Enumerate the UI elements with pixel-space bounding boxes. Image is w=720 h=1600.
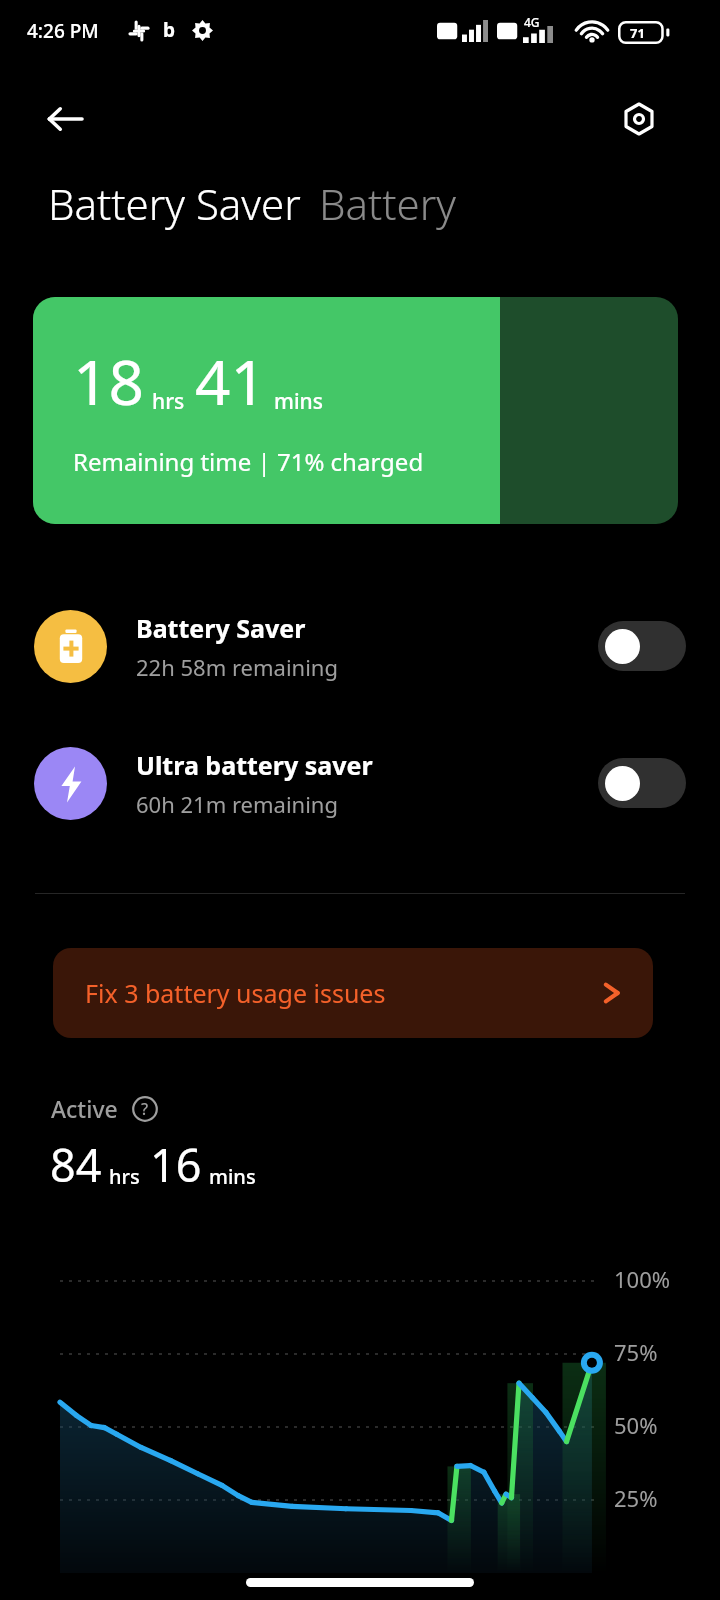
button[interactable]: Battery Saver <box>48 175 301 232</box>
staticText: mins <box>209 1163 256 1190</box>
staticText: 71 <box>630 24 645 42</box>
staticText: 75% <box>614 1337 658 1367</box>
button[interactable]: Battery Saver <box>34 602 686 690</box>
staticText: hrs <box>152 387 185 416</box>
staticText: hrs <box>109 1163 140 1190</box>
staticText: b <box>163 17 176 43</box>
button[interactable]: Ultra battery saver <box>34 739 686 827</box>
button[interactable]: Back <box>34 88 96 150</box>
staticText: 4G <box>524 14 540 30</box>
button[interactable]: Home <box>246 1578 474 1587</box>
button[interactable]: Battery Saver toggle <box>598 621 686 671</box>
staticText: Battery Saver <box>136 611 306 645</box>
staticText: Battery <box>319 175 457 232</box>
staticText: 84 <box>50 1134 102 1195</box>
button[interactable]: 18 <box>33 297 678 524</box>
button[interactable]: Settings <box>608 88 670 150</box>
staticText: Battery Saver <box>48 175 301 232</box>
staticText: 18 <box>73 339 144 423</box>
button[interactable]: Battery <box>319 175 457 232</box>
staticText: 100% <box>614 1264 671 1294</box>
staticText: 41 <box>195 339 266 423</box>
button[interactable]: Help about active time <box>130 1094 160 1124</box>
staticText: Fix 3 battery usage issues <box>85 976 386 1010</box>
staticText: ? <box>141 1098 149 1120</box>
staticText: 22h 58m remaining <box>136 652 338 682</box>
staticText: 25% <box>614 1483 658 1513</box>
staticText: Active <box>51 1093 118 1124</box>
staticText: mins <box>274 387 323 416</box>
staticText: Ultra battery saver <box>136 748 373 782</box>
staticText: 60h 21m remaining <box>136 789 338 819</box>
button[interactable]: Ultra battery saver toggle <box>598 758 686 808</box>
staticText: 4:26 PM <box>27 18 99 44</box>
staticText: Remaining time | 71% charged <box>73 445 424 478</box>
button[interactable]: Fix 3 battery usage issues <box>53 948 653 1038</box>
staticText: 16 <box>150 1134 202 1195</box>
staticText: 50% <box>614 1410 658 1440</box>
